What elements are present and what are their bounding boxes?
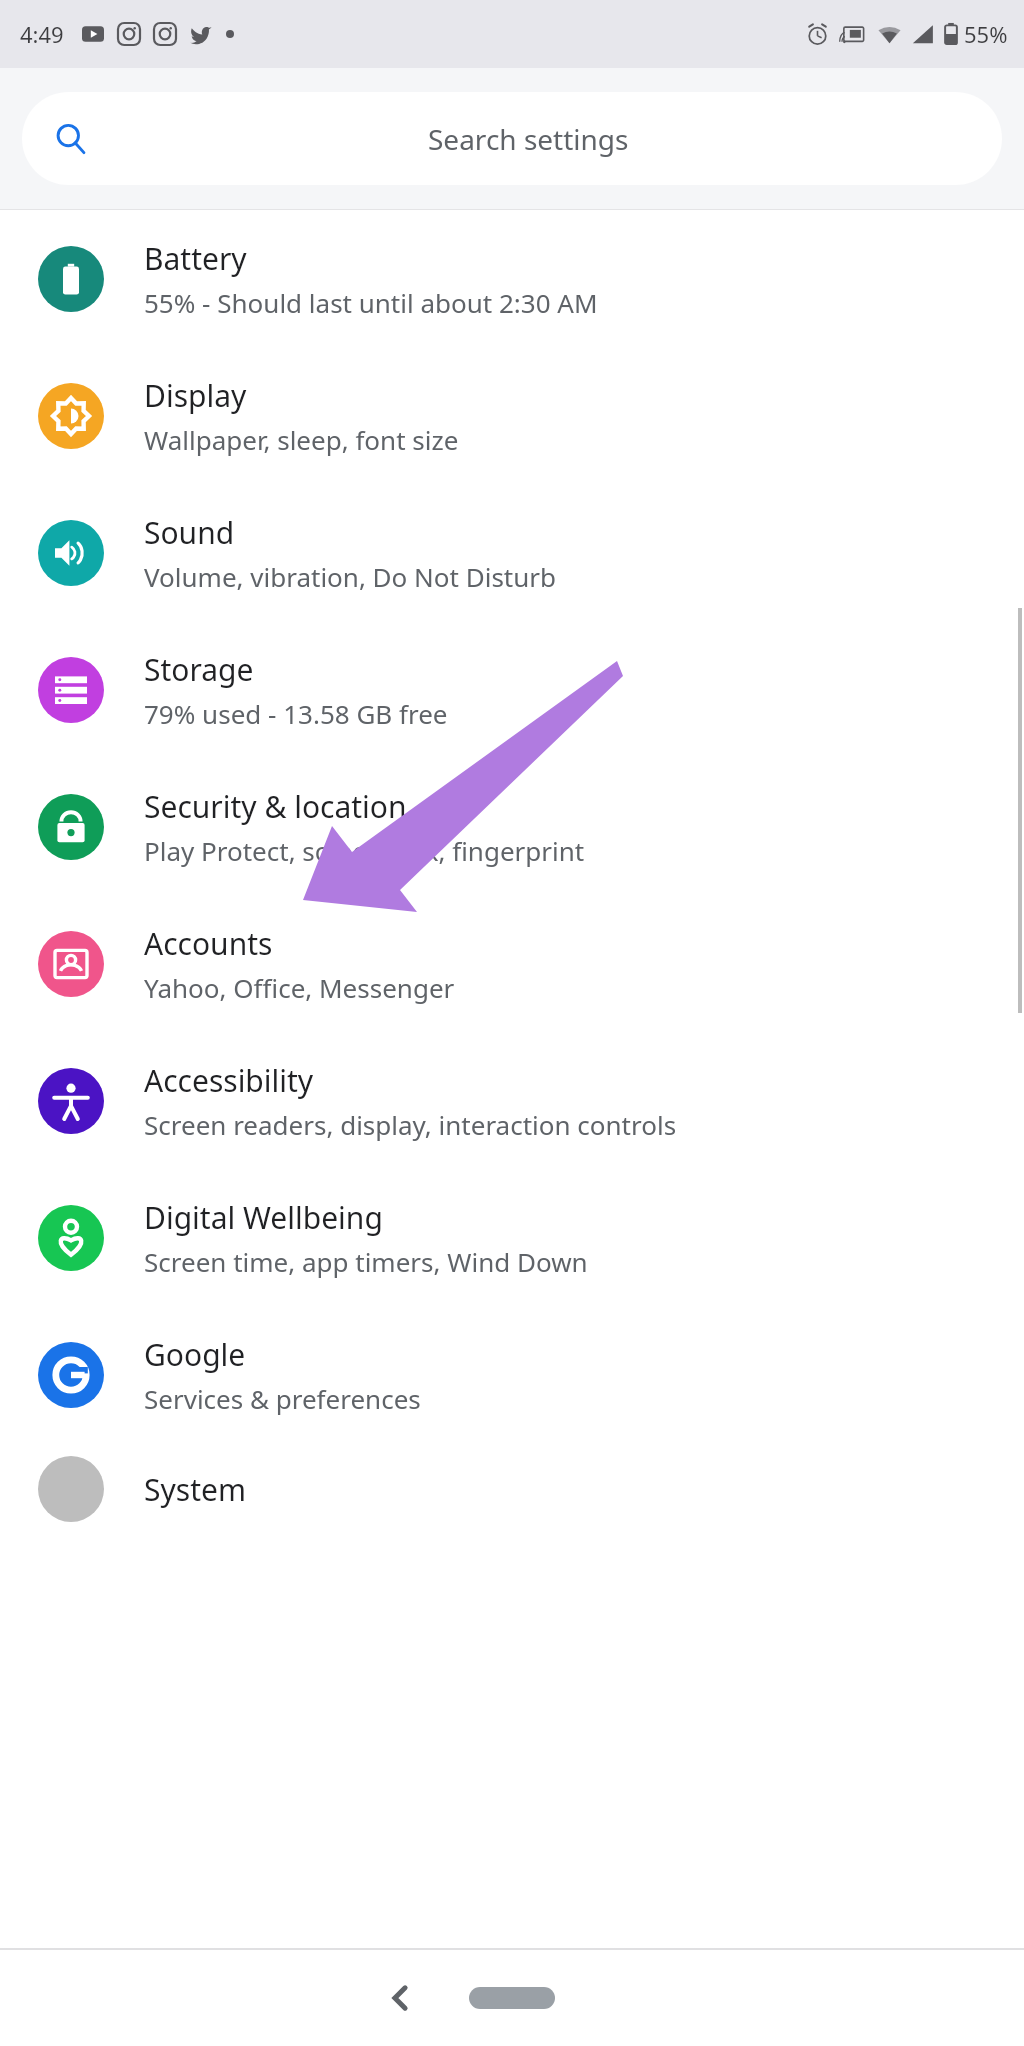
staticText: Digital Wellbeing (144, 1197, 383, 1238)
staticText: Sound (144, 512, 235, 553)
staticText: Accounts (144, 923, 273, 964)
button[interactable]: Display (0, 347, 1024, 484)
staticText: Wallpaper, sleep, font size (144, 422, 459, 457)
staticText: Battery (144, 238, 247, 279)
staticText: Screen readers, display, interaction con… (144, 1107, 677, 1142)
staticText: Screen time, app timers, Wind Down (144, 1244, 588, 1279)
staticText: 55% - Should last until about 2:30 AM (144, 285, 598, 320)
button[interactable]: Google (0, 1306, 1024, 1443)
staticText: Yahoo, Office, Messenger (144, 970, 455, 1005)
staticText: Volume, vibration, Do Not Disturb (144, 559, 557, 594)
staticText: Accessibility (144, 1060, 314, 1101)
staticText: System (144, 1469, 246, 1510)
staticText: Display (144, 375, 247, 416)
staticText: 4:49 (20, 19, 64, 49)
button[interactable]: Storage (0, 621, 1024, 758)
staticText: 55% (964, 19, 1008, 49)
button[interactable]: Accessibility (0, 1032, 1024, 1169)
staticText: Play Protect, screen lock, fingerprint (144, 833, 585, 868)
staticText: Services & preferences (144, 1381, 421, 1416)
button[interactable]: Digital Wellbeing (0, 1169, 1024, 1306)
button[interactable]: Accounts (0, 895, 1024, 1032)
staticText: Security & location (144, 786, 407, 827)
button[interactable]: Security & location (0, 758, 1024, 895)
staticText: Storage (144, 649, 254, 690)
staticText: Google (144, 1334, 246, 1375)
button[interactable]: Battery (0, 210, 1024, 347)
button[interactable]: System (0, 1443, 1024, 1535)
button[interactable]: Search settings (22, 92, 1002, 185)
staticText: Search settings (428, 120, 629, 158)
staticText: 79% used - 13.58 GB free (144, 696, 448, 731)
button[interactable]: Home (452, 1972, 572, 2024)
button[interactable]: Sound (0, 484, 1024, 621)
button[interactable]: Back (365, 1963, 435, 2033)
